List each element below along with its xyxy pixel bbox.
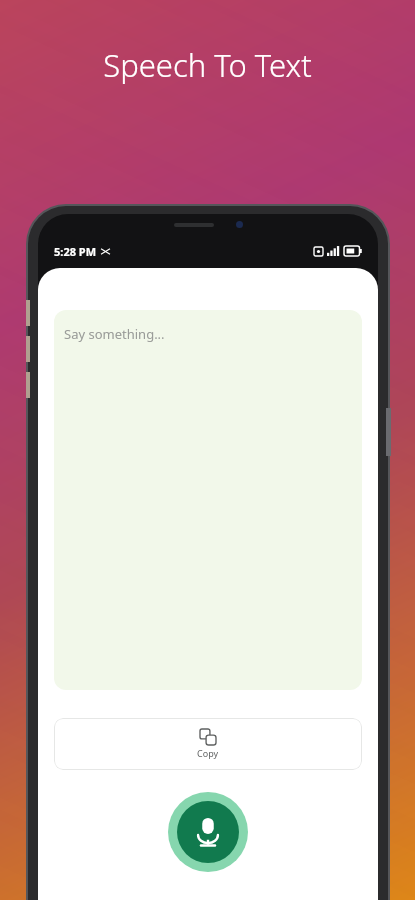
button[interactable]: Copy [54,718,362,770]
staticText: Copy [197,747,219,759]
staticText: 5:28 PM [54,244,97,259]
button[interactable]: Say something... [54,310,362,690]
staticText: Speech To Text [103,44,312,86]
button[interactable]: Start listening [168,792,248,872]
staticText: Say something... [64,325,165,343]
